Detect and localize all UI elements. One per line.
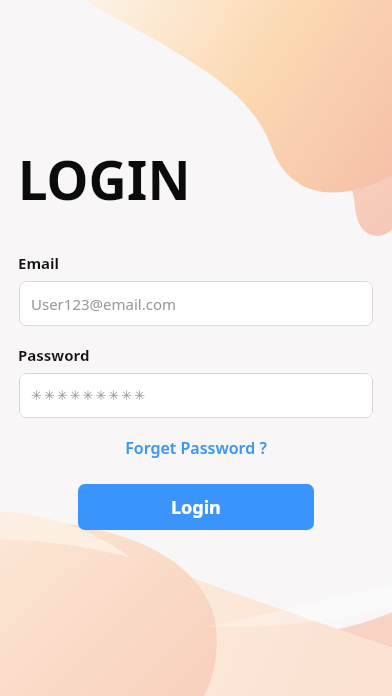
staticText: Forget Password ? bbox=[125, 437, 267, 459]
button[interactable]: ✳✳✳✳✳✳✳✳✳ bbox=[19, 373, 373, 418]
staticText: Login bbox=[171, 495, 221, 520]
button[interactable]: Forget Password ? bbox=[0, 431, 392, 465]
staticText: Password bbox=[18, 345, 90, 365]
staticText: ✳✳✳✳✳✳✳✳✳ bbox=[31, 388, 148, 403]
staticText: Email bbox=[18, 253, 59, 273]
staticText: LOGIN bbox=[18, 143, 191, 215]
button[interactable]: User123@email.com bbox=[19, 281, 373, 326]
button[interactable]: Login bbox=[78, 484, 314, 530]
staticText: User123@email.com bbox=[31, 294, 176, 314]
